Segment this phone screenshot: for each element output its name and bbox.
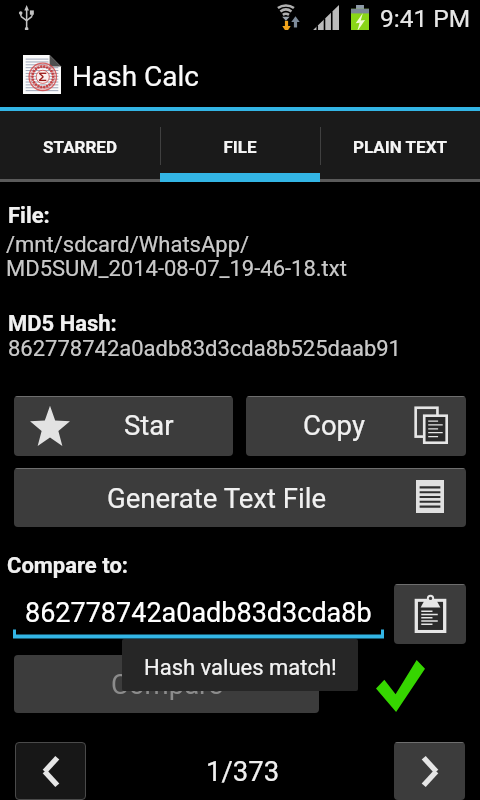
staticText: MD5 Hash: (8, 311, 117, 337)
staticText: Compare to: (7, 553, 128, 579)
staticText: Copy (303, 409, 365, 441)
staticText: Compare (111, 668, 223, 700)
button[interactable]: PLAIN TEXT (320, 111, 480, 182)
button[interactable]: Next (394, 742, 465, 800)
staticText: Generate Text File (107, 482, 326, 514)
button[interactable]: Generate Text File (14, 468, 466, 527)
staticText: 862778742a0adb83d3cda8b525daab91 (8, 336, 401, 362)
staticText: FILE (223, 137, 257, 157)
button[interactable]: Previous (15, 742, 86, 800)
staticText: Hash Calc (72, 60, 199, 93)
staticText: MD5SUM_2014-08-07_19-46-18.txt (6, 256, 347, 282)
button[interactable]: Paste from clipboard (394, 584, 466, 644)
staticText: 862778742a0adb83d3cda8b (25, 597, 372, 629)
staticText: Star (124, 409, 174, 441)
staticText: File: (8, 203, 50, 229)
staticText: 1/373 (206, 755, 280, 787)
staticText: PLAIN TEXT (353, 137, 447, 157)
staticText: /mnt/sdcard/WhatsApp/ (6, 232, 250, 258)
button[interactable]: Compare (14, 655, 319, 713)
button[interactable]: FILE (160, 111, 320, 182)
button[interactable]: Copy (246, 396, 466, 456)
button[interactable]: STARRED (0, 111, 160, 182)
staticText: 9:41 PM (380, 4, 471, 33)
staticText: Hash values match! (144, 655, 337, 681)
staticText: STARRED (43, 137, 117, 157)
button[interactable]: Star (14, 396, 233, 456)
